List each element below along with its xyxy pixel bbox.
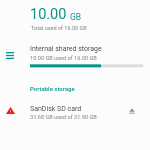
staticText: Total used of 16.00 GB [31, 25, 87, 31]
other: Eject [129, 108, 135, 114]
staticText: SanDisk SD card [30, 105, 82, 113]
staticText: Portable storage [30, 85, 75, 92]
staticText: 10.00 GB used of 16.00 GB [30, 55, 97, 62]
staticText: 10.00 [30, 6, 67, 23]
staticText: GB [70, 12, 82, 22]
button[interactable]: SanDisk SD card [0, 100, 150, 124]
button[interactable]: Internal shared storage [0, 40, 150, 70]
staticText: 31.68 GB used of 31.90 GB [30, 114, 97, 121]
staticText: Internal shared storage [30, 45, 102, 53]
